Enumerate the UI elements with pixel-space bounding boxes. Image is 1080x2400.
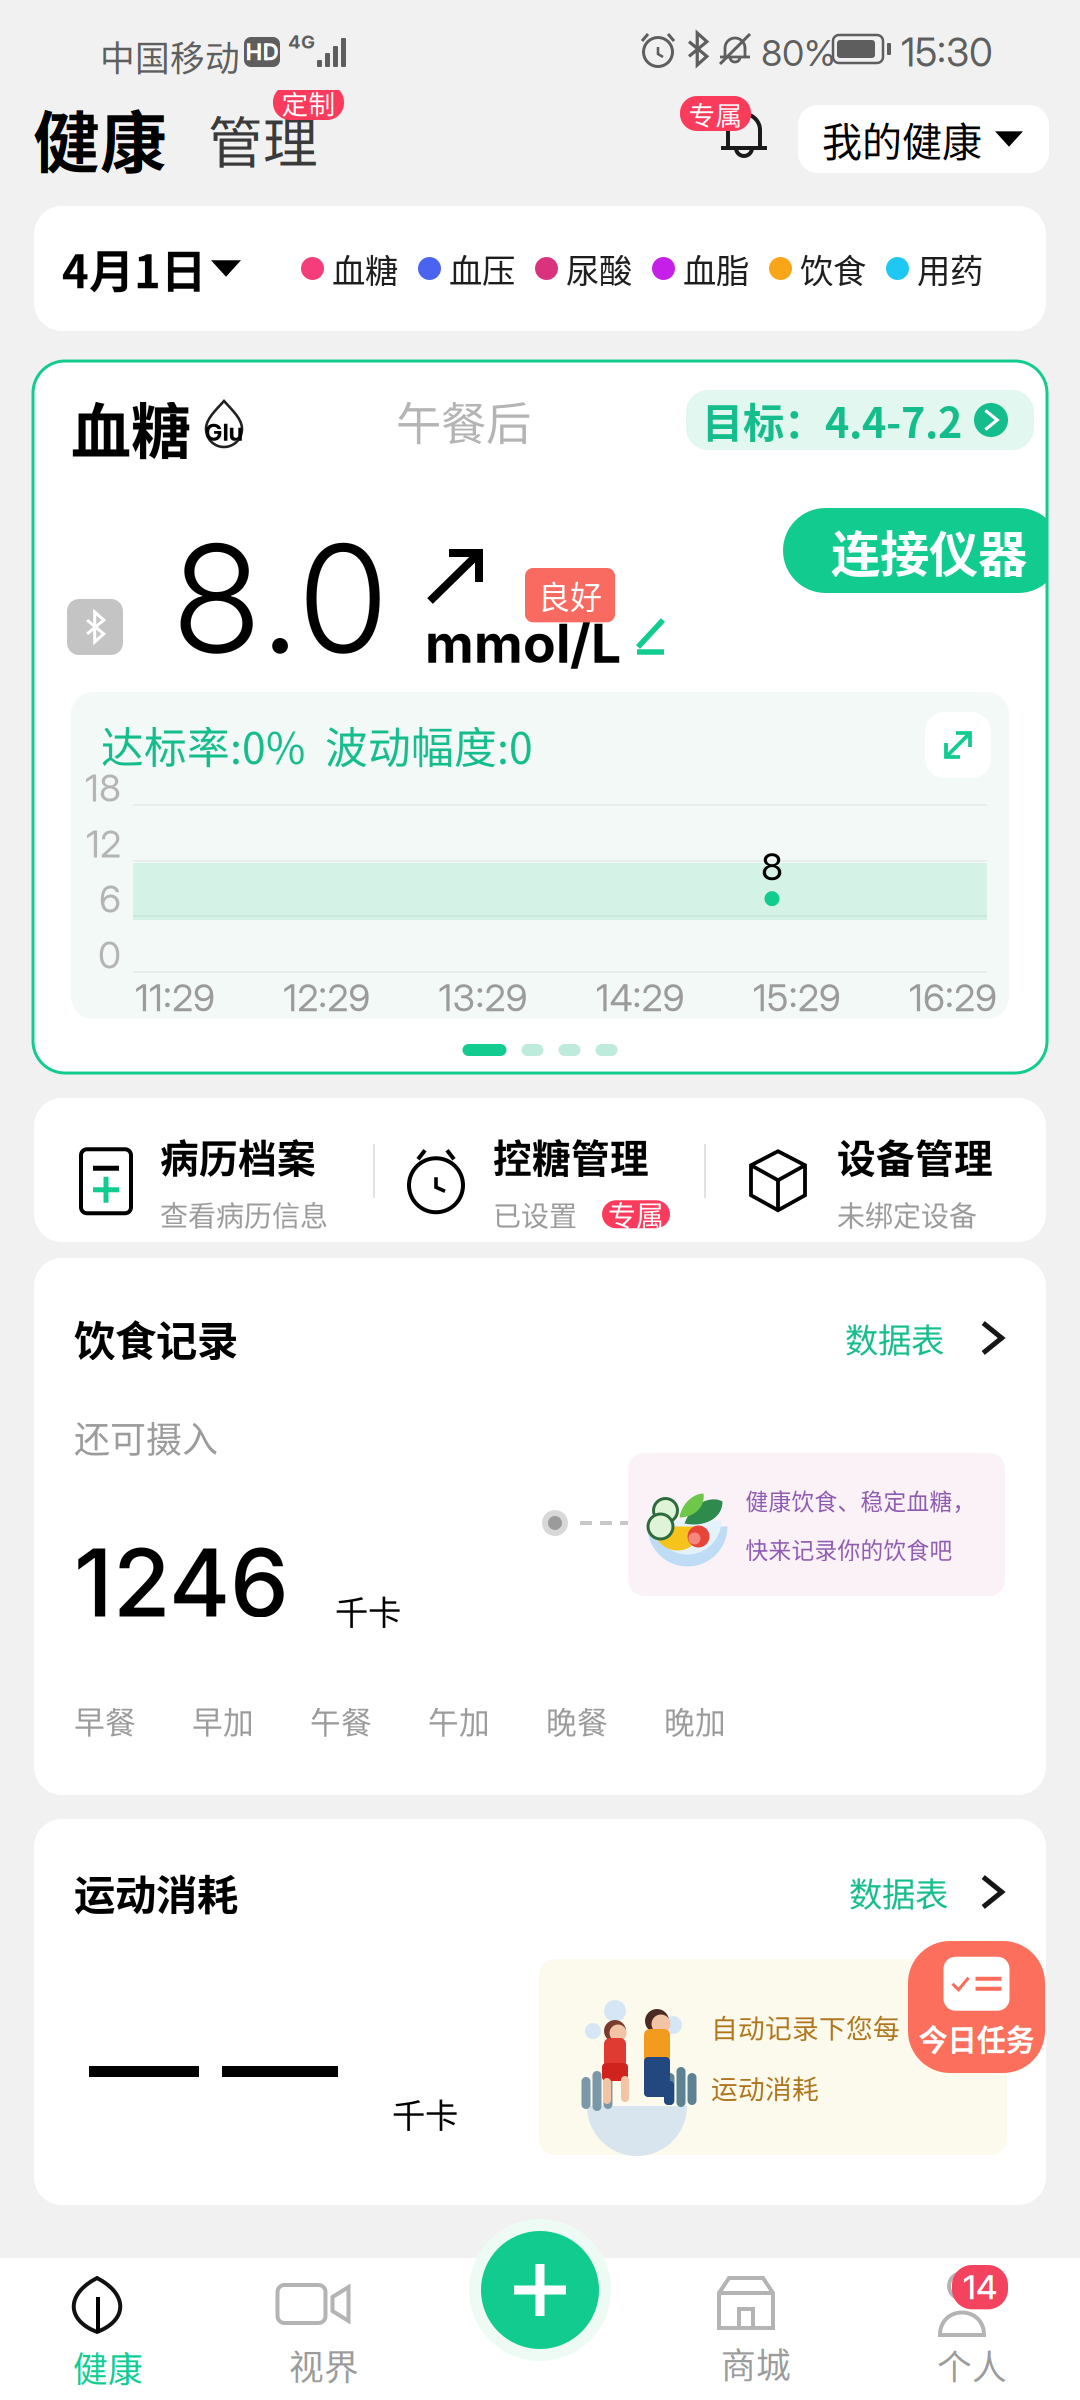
staticText: 已设置 <box>493 1194 577 1234</box>
button[interactable]: 饮食 <box>769 244 866 293</box>
staticText: 数据表 <box>845 1314 944 1362</box>
button[interactable]: 午加 <box>428 1698 490 1742</box>
staticText: 商城 <box>721 2338 791 2388</box>
button[interactable]: 血压 <box>418 244 515 293</box>
staticText: 午加 <box>428 1698 490 1742</box>
staticText: 血糖 <box>332 244 398 293</box>
staticText: 自动记录下您每 <box>711 2007 900 2046</box>
staticText: 病历档案 <box>160 1128 316 1184</box>
button[interactable]: 目标：4.4-7.2 <box>686 390 1034 450</box>
staticText: 控糖管理 <box>493 1128 649 1184</box>
staticText: 12 <box>86 821 121 867</box>
button[interactable]: 尿酸 <box>535 244 632 293</box>
staticText: 80% <box>761 31 836 75</box>
button[interactable]: 用药 <box>886 244 983 293</box>
button[interactable]: 控糖管理 <box>407 1128 670 1234</box>
button[interactable]: 添加 <box>469 2219 611 2361</box>
button[interactable]: 早餐 <box>74 1698 136 1742</box>
staticText: 目标：4.4-7.2 <box>702 390 962 450</box>
button[interactable]: 晚餐 <box>546 1698 608 1742</box>
staticText: 12:29 <box>283 975 370 1020</box>
button[interactable]: 通知 <box>680 96 769 159</box>
staticText: 还可摄入 <box>74 1411 218 1463</box>
staticText: 设备管理 <box>837 1128 993 1184</box>
staticText: 13:29 <box>438 975 527 1020</box>
staticText: 午餐后 <box>396 388 531 454</box>
staticText: 专属 <box>688 94 742 133</box>
button[interactable]: 血脂 <box>652 244 749 293</box>
staticText: 达标率:0% 波动幅度:0 <box>101 714 533 776</box>
button[interactable]: 病历档案 <box>78 1128 328 1234</box>
button[interactable]: 14 <box>864 2251 1080 2400</box>
staticText: 血糖 <box>71 384 191 471</box>
staticText: 今日任务 <box>918 2017 1034 2059</box>
staticText: 运动消耗 <box>74 1862 238 1922</box>
staticText: 晚餐 <box>546 1698 608 1742</box>
button[interactable]: 我的健康 <box>798 105 1049 173</box>
staticText: 16:29 <box>909 975 997 1020</box>
button[interactable]: 商城 <box>648 2251 864 2400</box>
button[interactable]: 4月1日 <box>62 236 241 301</box>
button[interactable]: 晚加 <box>664 1698 726 1742</box>
staticText: 血脂 <box>683 244 749 293</box>
staticText: 14:29 <box>596 975 685 1020</box>
staticText: 尿酸 <box>566 244 632 293</box>
button[interactable]: 血糖 <box>301 244 398 293</box>
staticText: 视界 <box>289 2340 359 2390</box>
staticText: 血压 <box>449 244 515 293</box>
staticText: 健康饮食、稳定血糖， <box>745 1484 975 1516</box>
staticText: 我的健康 <box>822 110 982 168</box>
staticText: 查看病历信息 <box>160 1194 328 1234</box>
button[interactable]: 午餐 <box>310 1698 372 1742</box>
button[interactable]: 连接仪器 <box>783 508 1061 593</box>
staticText: 早餐 <box>74 1698 136 1742</box>
staticText: 8.0 <box>171 508 389 689</box>
button[interactable]: 数据表 <box>849 1868 1014 1916</box>
staticText: 15:29 <box>753 975 841 1020</box>
staticText: 用药 <box>917 244 983 293</box>
staticText: 午餐 <box>310 1698 372 1742</box>
staticText: HD <box>245 38 278 66</box>
staticText: 运动消耗 <box>711 2068 819 2107</box>
button[interactable]: 健康 <box>33 90 167 186</box>
button[interactable]: 全屏 <box>925 712 991 778</box>
staticText: 4G <box>288 30 315 53</box>
button[interactable]: 早加 <box>192 1698 254 1742</box>
staticText: 个人 <box>937 2340 1007 2390</box>
staticText: 千卡 <box>392 2089 458 2137</box>
staticText: 饮食 <box>800 244 866 293</box>
button[interactable]: 今日任务 <box>908 1941 1045 2073</box>
staticText: 15:30 <box>901 29 993 76</box>
staticText: 千卡 <box>335 1586 401 1634</box>
staticText: 健康 <box>33 90 167 186</box>
staticText: Glu <box>204 417 243 446</box>
staticText: 早加 <box>192 1698 254 1742</box>
staticText: 中国移动 <box>100 31 240 81</box>
staticText: 11:29 <box>135 975 215 1020</box>
staticText: 良好 <box>538 572 602 618</box>
staticText: 快来记录你的饮食吧 <box>745 1532 952 1565</box>
staticText: 4月1日 <box>62 236 206 301</box>
button[interactable]: 管理 <box>208 85 344 178</box>
staticText: 定制 <box>281 83 335 122</box>
button[interactable]: 视界 <box>216 2251 432 2400</box>
staticText: 18 <box>85 765 121 811</box>
staticText: 健康 <box>73 2342 143 2392</box>
staticText: 晚加 <box>664 1698 726 1742</box>
staticText: 管理 <box>208 99 318 178</box>
staticText: 未绑定设备 <box>837 1194 977 1234</box>
staticText: 6 <box>99 876 121 922</box>
staticText: 专属 <box>608 1194 664 1234</box>
staticText: 0 <box>98 932 121 978</box>
button[interactable]: 健康 <box>0 2251 216 2400</box>
staticText: 饮食记录 <box>74 1308 238 1368</box>
staticText: 数据表 <box>849 1868 948 1916</box>
staticText: 1246 <box>74 1526 289 1639</box>
staticText: mmol/L <box>425 611 621 675</box>
staticText: 14 <box>963 2267 997 2307</box>
button[interactable]: 设备管理 <box>747 1128 993 1234</box>
staticText: 8 <box>761 844 783 889</box>
button[interactable]: 数据表 <box>845 1314 1014 1362</box>
staticText: 连接仪器 <box>831 515 1027 586</box>
